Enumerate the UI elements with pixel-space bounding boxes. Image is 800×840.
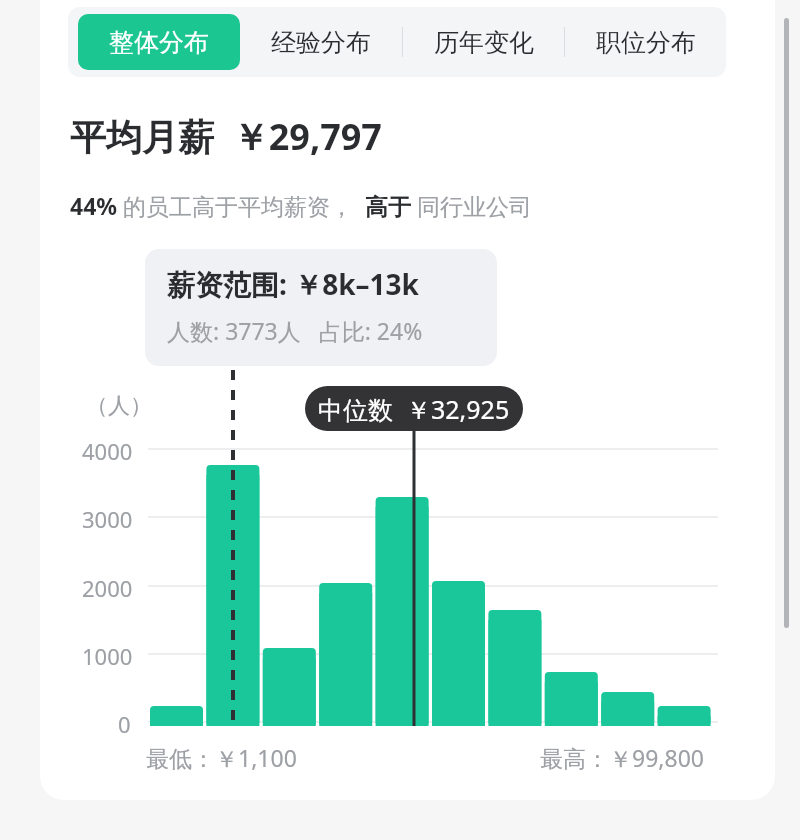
staticText: 职位分布 [596, 27, 696, 58]
button[interactable]: 整体分布 [78, 14, 240, 70]
button[interactable]: 历年变化 [403, 7, 564, 77]
staticText: 中位数 ￥32,925 [318, 392, 510, 426]
staticText: 最低：￥1,100 [146, 742, 297, 773]
staticText: 历年变化 [434, 27, 534, 58]
staticText: 薪资范围: ￥8k–13k [167, 265, 419, 303]
staticText: 整体分布 [109, 27, 209, 58]
staticText: 4000 [82, 436, 133, 466]
staticText: 44% 的员工高于平均薪资， 高于 同行业公司 [70, 190, 532, 221]
staticText: 人数: 3773人 占比: 24% [167, 315, 423, 346]
button[interactable]: 职位分布 [565, 7, 726, 77]
button[interactable]: 经验分布 [240, 7, 402, 77]
staticText: 0 [118, 709, 131, 739]
staticText: 2000 [82, 573, 133, 603]
staticText: 经验分布 [271, 27, 371, 58]
staticText: 1000 [82, 641, 133, 671]
staticText: 平均月薪 ￥29,797 [70, 112, 382, 161]
staticText: 3000 [82, 504, 133, 534]
staticText: 最高：￥99,800 [540, 742, 704, 773]
staticText: （人） [86, 392, 152, 420]
